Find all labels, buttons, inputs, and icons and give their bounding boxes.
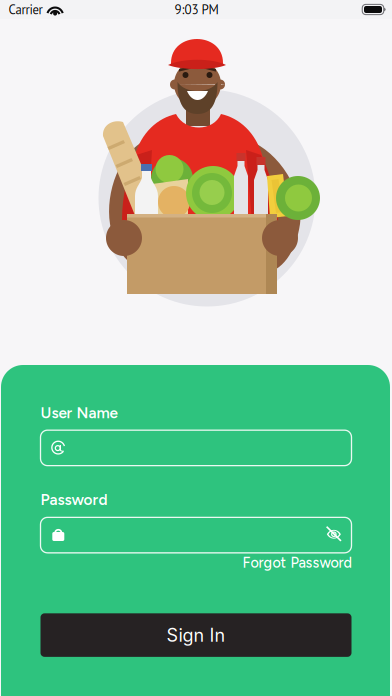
button[interactable]: Forgot Password (40, 551, 351, 574)
staticText: Forgot Password (242, 554, 351, 571)
staticText: Sign In (166, 624, 225, 646)
button[interactable]: Sign In (40, 613, 351, 657)
staticText: User Name (40, 404, 117, 422)
staticText: Carrier (8, 1, 42, 18)
staticText: 9:03 PM (174, 1, 218, 18)
staticText: Password (40, 490, 107, 509)
button[interactable]: Show password (319, 519, 349, 548)
